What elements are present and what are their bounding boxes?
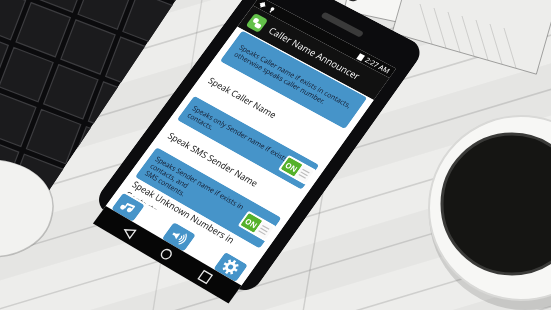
button[interactable]: Volume: [162, 222, 196, 252]
button[interactable]: Speak SMS Sender Name: [157, 120, 302, 218]
button[interactable]: Speaks Caller name if exists in contacts…: [220, 30, 367, 129]
staticText: Caller Name Announcer: [266, 24, 363, 82]
staticText: Speaks Caller name if exists in contacts…: [232, 43, 354, 117]
staticText: Speak Unknown Numbers in Contacts: [127, 178, 260, 263]
button[interactable]: Recents: [190, 263, 220, 291]
button[interactable]: Speaks Sender name if exists in contacts…: [135, 147, 282, 249]
button[interactable]: Speak Unknown Numbers in Contacts: [124, 177, 260, 263]
button[interactable]: Toggle: [278, 155, 317, 185]
staticText: ON: [283, 159, 300, 174]
staticText: Speak SMS Sender Name: [165, 130, 261, 189]
button[interactable]: Home: [151, 240, 181, 268]
button[interactable]: Toggle: [237, 210, 277, 242]
staticText: ON: [243, 215, 260, 230]
button[interactable]: Back: [114, 218, 144, 246]
staticText: 2:27 AM: [363, 55, 392, 75]
button[interactable]: Speaks only Sender name if exists in con…: [177, 96, 319, 190]
button[interactable]: Speak Caller Name: [194, 61, 345, 165]
button[interactable]: Ringtone: [111, 193, 145, 222]
staticText: Speak Caller Name: [206, 75, 280, 121]
staticText: Speaks Sender name if exists in contacts…: [143, 154, 273, 241]
button[interactable]: Settings: [213, 252, 248, 282]
staticText: Speaks only Sender name if exists in con…: [186, 103, 310, 182]
